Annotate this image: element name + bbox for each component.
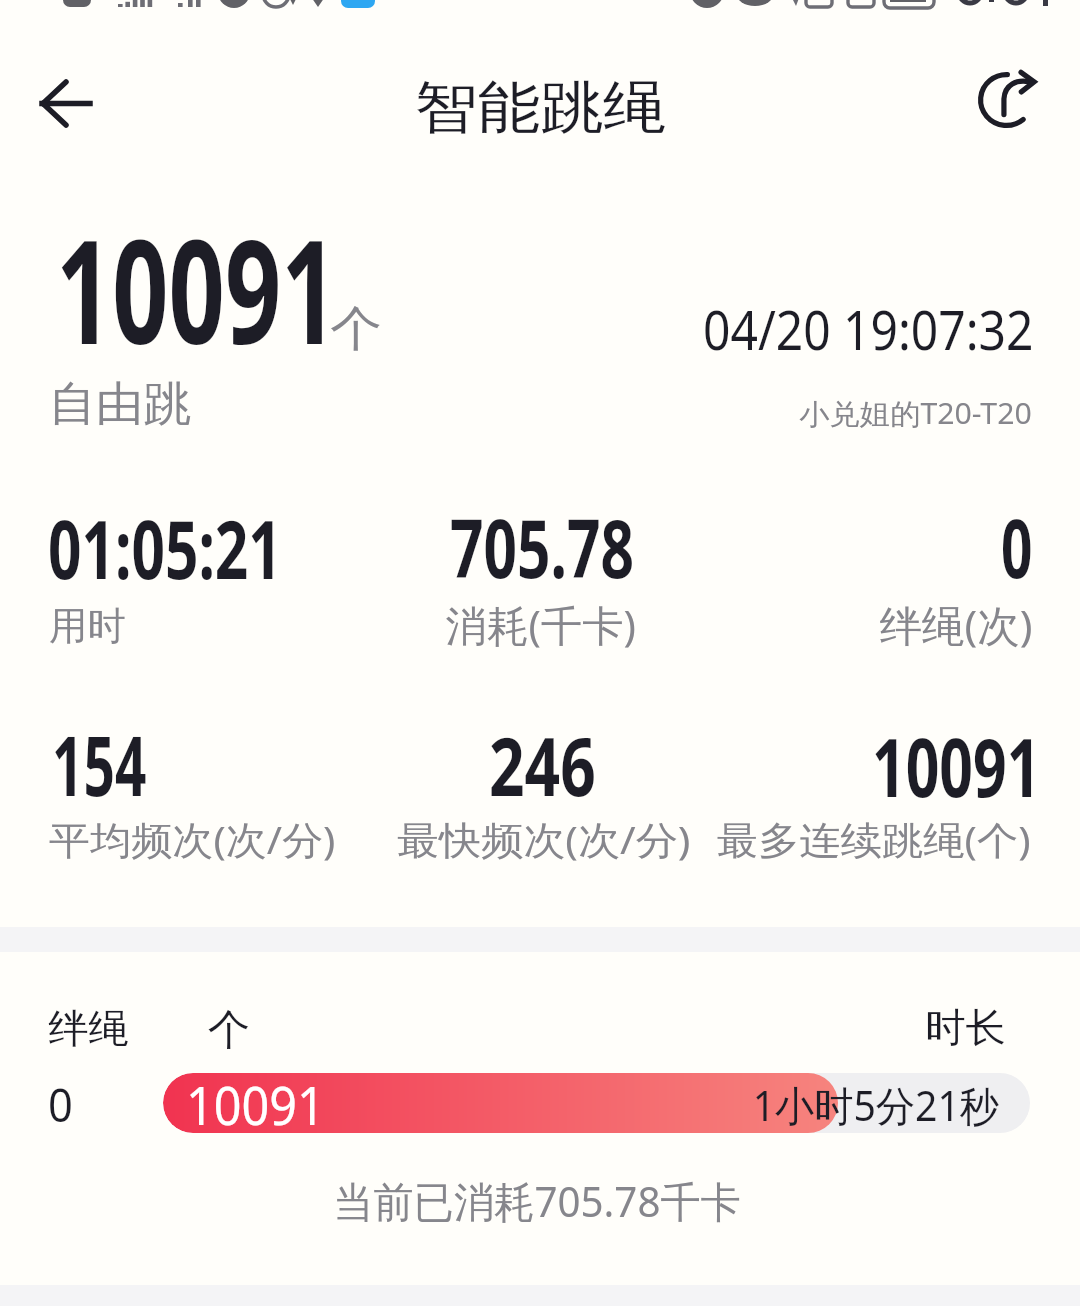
button[interactable]: 最快频次(次/分) 246 <box>380 718 700 878</box>
button[interactable]: 用时 01:05:21 <box>40 500 340 660</box>
button[interactable]: 智能跳绳 <box>418 74 665 138</box>
button[interactable]: 最多连续跳绳(个) 10091 <box>710 718 1040 878</box>
button[interactable]: 绊绳(次) 0 <box>760 500 1050 660</box>
button[interactable]: Share <box>962 56 1051 144</box>
button[interactable]: 平均频次(次/分) 154 <box>40 718 340 878</box>
button[interactable]: 10091 jumps, 1 hour 5 min 21 sec <box>163 1073 1030 1133</box>
button[interactable]: 消耗(千卡) 705.78 <box>400 500 700 660</box>
button[interactable]: Back <box>24 64 106 142</box>
